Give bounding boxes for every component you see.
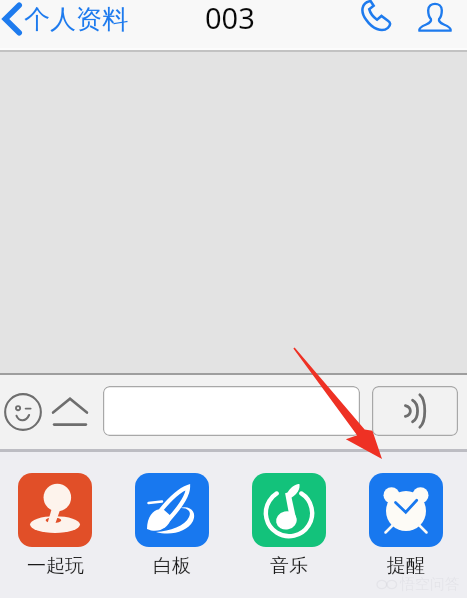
staticText: 003 [205,0,255,37]
button[interactable]: 白板 [135,473,209,578]
button[interactable]: Emoji [2,391,44,433]
staticText: 悟空问答 [400,575,460,594]
staticText: 一起玩 [27,554,84,578]
staticText: 提醒 [387,554,425,578]
button[interactable]: Contact [413,0,457,39]
button[interactable]: More [48,390,92,434]
button[interactable] [103,386,360,436]
button[interactable]: 提醒 [369,473,443,578]
staticText: 个人资料 [24,3,128,36]
button[interactable]: 一起玩 [18,473,92,578]
staticText: 音乐 [270,554,308,578]
button[interactable]: 个人资料 [0,0,128,40]
staticText: 白板 [153,554,191,578]
button[interactable]: 音乐 [252,473,326,578]
button[interactable]: Voice [372,386,458,436]
button[interactable]: Call [353,0,397,39]
